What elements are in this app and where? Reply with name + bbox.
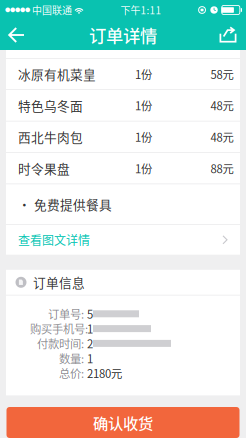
staticText: ●●●●● <box>5 6 30 14</box>
staticText: 冰原有机菜皇 <box>18 65 96 83</box>
staticText: 48元 <box>210 97 233 114</box>
staticText: 2180元 <box>84 365 122 381</box>
staticText: 88元 <box>210 160 233 176</box>
staticText: 1份 <box>135 160 152 176</box>
staticText: 总价: <box>59 365 84 381</box>
staticText: 订单详情 <box>89 22 157 48</box>
staticText: · 免费提供餐具 <box>18 195 112 213</box>
staticText: 2 <box>84 335 93 352</box>
staticText: 1 <box>84 320 93 337</box>
staticText: 确认收货 <box>93 411 153 434</box>
button[interactable]: 查看图文详情 <box>6 225 240 255</box>
staticText: 1份 <box>135 66 152 82</box>
staticText: 48元 <box>210 129 233 145</box>
staticText: 1份 <box>135 129 152 145</box>
staticText: 西北牛肉包 <box>18 128 83 146</box>
button[interactable]: Share <box>200 20 246 50</box>
staticText: 购买手机号: <box>30 320 88 337</box>
staticText: 5 <box>84 306 93 322</box>
staticText: 订单信息 <box>27 273 85 291</box>
staticText: 特色乌冬面 <box>18 96 83 114</box>
staticText: 订单号: <box>48 306 84 322</box>
staticText: 中国联通 <box>30 3 74 17</box>
staticText: 下午1:11 <box>120 3 161 17</box>
staticText: 58元 <box>210 66 233 82</box>
staticText: 查看图文详情 <box>18 231 90 248</box>
staticText: 数量: <box>59 350 84 366</box>
staticText: 付款时间: <box>37 335 84 352</box>
staticText: 1份 <box>135 97 152 114</box>
button[interactable]: 确认收货 <box>6 407 239 438</box>
button[interactable]: Back <box>0 20 46 50</box>
staticText: 1 <box>84 350 93 366</box>
staticText: 时令果盘 <box>18 159 70 177</box>
